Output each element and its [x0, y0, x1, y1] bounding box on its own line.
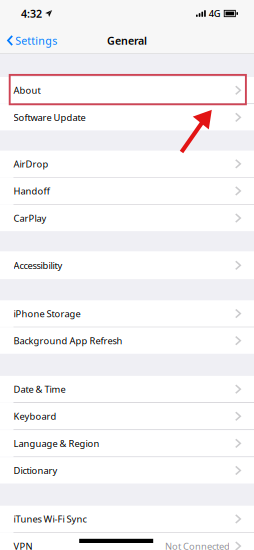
button[interactable]: Accessibility	[0, 251, 254, 279]
staticText: Background App Refresh	[13, 334, 122, 347]
staticText: Settings	[15, 33, 57, 48]
staticText: Software Update	[13, 111, 85, 124]
button[interactable]: Handoff	[0, 178, 254, 204]
staticText: Keyboard	[13, 410, 56, 422]
staticText: iPhone Storage	[13, 307, 80, 320]
staticText: Dictionary	[13, 464, 57, 477]
button[interactable]: Background App Refresh	[0, 327, 254, 354]
staticText: Handoff	[13, 185, 49, 197]
button[interactable]: Keyboard	[0, 403, 254, 429]
staticText: iTunes Wi-Fi Sync	[13, 513, 86, 525]
staticText: CarPlay	[13, 212, 46, 224]
staticText: Not Connected	[165, 540, 230, 550]
staticText: 4:32	[21, 6, 42, 21]
button[interactable]: AirDrop	[0, 151, 254, 177]
button[interactable]: Date & Time	[0, 376, 254, 402]
staticText: Language & Region	[13, 437, 99, 450]
button[interactable]: iTunes Wi-Fi Sync	[0, 506, 254, 532]
staticText: General	[107, 33, 147, 48]
staticText: AirDrop	[13, 158, 48, 170]
staticText: About	[13, 84, 40, 96]
button[interactable]: Dictionary	[0, 457, 254, 484]
staticText: Date & Time	[13, 383, 65, 395]
button[interactable]: About	[0, 77, 254, 103]
staticText: Accessibility	[13, 259, 62, 271]
staticText: 4G	[209, 7, 221, 20]
button[interactable]: Software Update	[0, 104, 254, 131]
button[interactable]: iPhone Storage	[0, 300, 254, 327]
button[interactable]: Language & Region	[0, 430, 254, 457]
button[interactable]: CarPlay	[0, 205, 254, 231]
staticText: VPN	[13, 540, 32, 550]
button[interactable]: Settings	[0, 28, 57, 53]
button[interactable]: VPN	[0, 533, 254, 550]
